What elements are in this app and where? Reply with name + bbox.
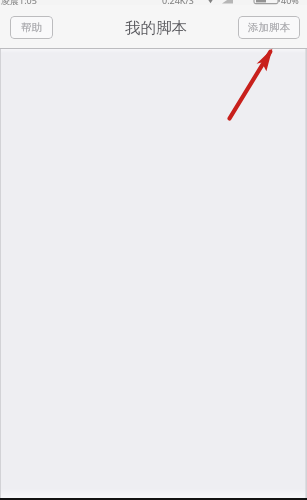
staticText: 帮助 xyxy=(21,21,42,34)
staticText: 我的脚本 xyxy=(125,18,187,38)
staticText: 0.24K/S xyxy=(162,0,194,6)
button[interactable]: 帮助 xyxy=(10,16,53,39)
button[interactable]: 添加脚本 xyxy=(238,16,300,39)
staticText: 添加脚本 xyxy=(248,21,290,34)
staticText: 40% xyxy=(281,0,299,6)
staticText: 凌晨1:05 xyxy=(1,0,37,6)
